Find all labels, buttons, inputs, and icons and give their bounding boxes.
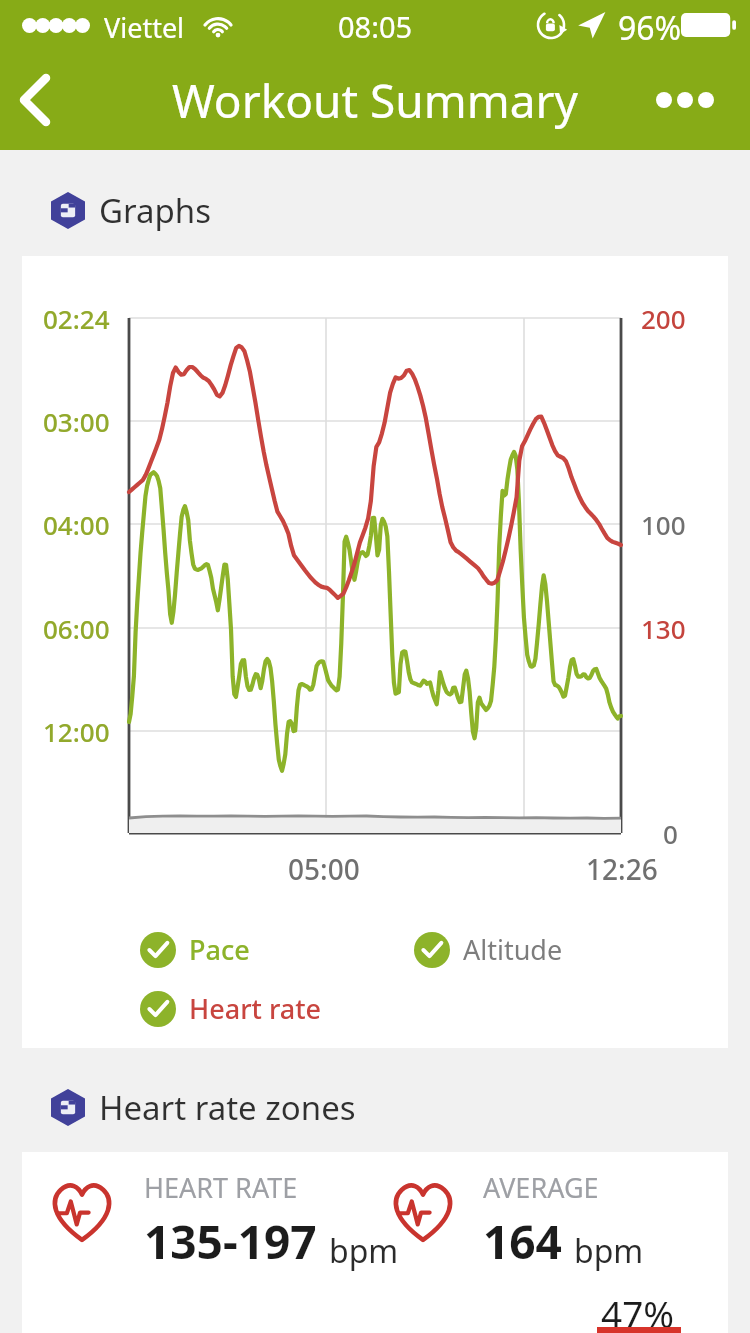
button[interactable]: Heart rate bbox=[140, 990, 322, 1027]
staticText: 03:00 bbox=[43, 404, 110, 439]
staticText: 12:26 bbox=[586, 850, 658, 888]
staticText: bpm bbox=[574, 1229, 644, 1273]
staticText: 04:00 bbox=[43, 507, 110, 542]
staticText: 100 bbox=[641, 507, 686, 542]
staticText: Pace bbox=[189, 931, 250, 968]
button[interactable]: Altitude bbox=[414, 931, 563, 968]
staticText: 02:24 bbox=[43, 301, 110, 336]
staticText: 06:00 bbox=[43, 611, 110, 646]
staticText: bpm bbox=[329, 1229, 399, 1273]
staticText: 164 bbox=[483, 1210, 562, 1273]
staticText: Workout Summary bbox=[172, 69, 579, 132]
button[interactable]: Heart rate zones bbox=[51, 1085, 356, 1130]
staticText: Heart rate bbox=[189, 990, 322, 1027]
button[interactable]: Graphs bbox=[51, 188, 212, 233]
staticText: 200 bbox=[641, 301, 686, 336]
button[interactable]: Back bbox=[0, 50, 72, 150]
staticText: 130 bbox=[641, 611, 686, 646]
button[interactable]: HEART RATE bbox=[22, 1152, 728, 1333]
staticText: 96% bbox=[618, 6, 682, 50]
staticText: Altitude bbox=[463, 931, 563, 968]
staticText: 47% bbox=[601, 1288, 675, 1333]
staticText: Viettel bbox=[104, 9, 185, 46]
staticText: Graphs bbox=[99, 188, 212, 233]
staticText: Heart rate zones bbox=[99, 1085, 356, 1130]
staticText: 135-197 bbox=[144, 1210, 317, 1273]
button[interactable]: 02:24 bbox=[22, 256, 728, 1048]
staticText: HEART RATE bbox=[144, 1169, 298, 1206]
staticText: 0 bbox=[663, 816, 678, 851]
staticText: 12:00 bbox=[43, 714, 110, 749]
staticText: AVERAGE bbox=[483, 1169, 599, 1206]
staticText: 08:05 bbox=[338, 7, 413, 46]
staticText: 05:00 bbox=[288, 850, 360, 888]
button[interactable]: More options bbox=[630, 50, 740, 150]
button[interactable]: Pace bbox=[140, 931, 250, 968]
